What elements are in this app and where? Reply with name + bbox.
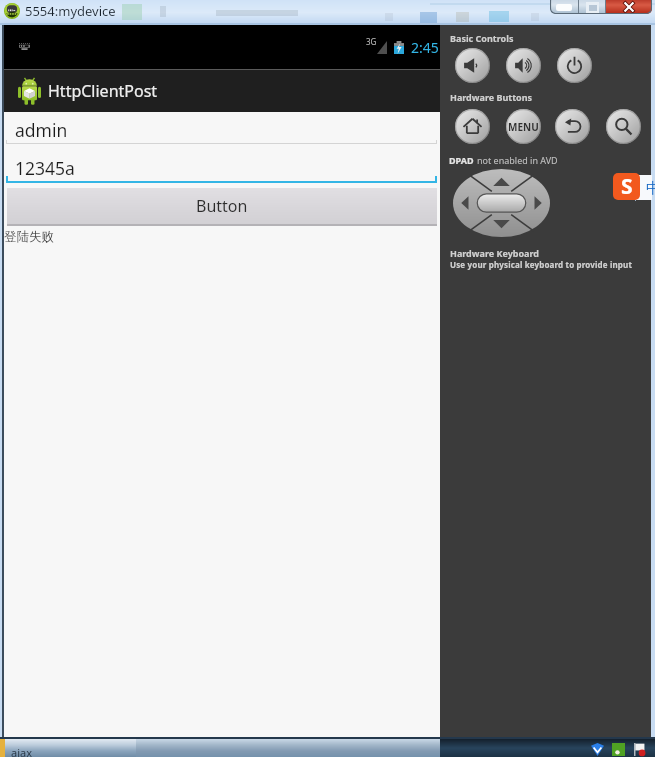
- staticText: Use your physical keyboard to provide in…: [450, 259, 633, 270]
- button[interactable]: [136, 739, 440, 757]
- button[interactable]: MENU: [506, 109, 541, 144]
- staticText: 中: [646, 179, 655, 198]
- staticText: Hardware Buttons: [450, 91, 533, 103]
- button[interactable]: Back: [555, 109, 590, 144]
- staticText: Basic Controls: [450, 32, 514, 44]
- staticText: not enabled in AVD: [477, 154, 558, 166]
- staticText: Hardware Keyboard: [450, 247, 540, 259]
- button[interactable]: Volume down: [455, 48, 490, 83]
- staticText: HttpClientPost: [48, 80, 158, 102]
- staticText: 12345a: [15, 156, 75, 180]
- button[interactable]: Minimize: [550, 0, 578, 14]
- button[interactable]: Maximize: [579, 0, 605, 14]
- staticText: DPAD: [449, 154, 474, 166]
- button[interactable]: admin: [15, 117, 451, 142]
- staticText: MENU: [508, 120, 539, 134]
- staticText: 2:45: [411, 38, 439, 57]
- button[interactable]: HttpClientPost: [4, 70, 440, 112]
- staticText: 3G: [366, 36, 377, 47]
- button[interactable]: Home: [455, 109, 490, 144]
- button[interactable]: Search: [606, 109, 641, 144]
- staticText: ajax: [11, 745, 32, 757]
- button[interactable]: Close: [606, 0, 652, 14]
- button[interactable]: Volume up: [506, 48, 541, 83]
- staticText: 5554:mydevice: [25, 2, 116, 19]
- staticText: S: [621, 173, 633, 199]
- button[interactable]: Button: [7, 188, 437, 224]
- button[interactable]: Power: [557, 48, 592, 83]
- staticText: admin: [15, 118, 68, 142]
- button[interactable]: ajax: [5, 739, 136, 757]
- button[interactable]: 12345a: [15, 155, 451, 180]
- staticText: Button: [196, 195, 248, 217]
- staticText: 登陆失败: [4, 229, 54, 245]
